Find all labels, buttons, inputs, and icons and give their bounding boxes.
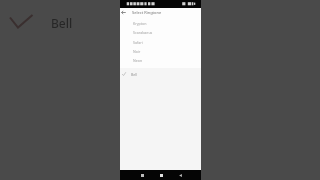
- button[interactable]: Scarabaeus: [120, 28, 201, 37]
- staticText: Bell: [131, 72, 138, 77]
- staticText: Scarabaeus: [133, 30, 153, 35]
- other: Back: [121, 10, 126, 15]
- staticText: Select Ringtone: [132, 10, 162, 15]
- button[interactable]: Back: [120, 7, 201, 17]
- staticText: Bell: [51, 15, 73, 31]
- staticText: Noir: [133, 49, 141, 54]
- button[interactable]: Recents: [137, 170, 147, 180]
- button[interactable]: Home: [156, 170, 166, 180]
- button[interactable]: Krypton: [120, 19, 201, 28]
- staticText: Krypton: [133, 21, 147, 26]
- staticText: Safari: [133, 40, 143, 45]
- staticText: Neon: [133, 58, 143, 63]
- button[interactable]: Neon: [120, 56, 201, 65]
- button[interactable]: Noir: [120, 47, 201, 56]
- button[interactable]: Selected check: [8, 13, 34, 30]
- button[interactable]: Safari: [120, 38, 201, 47]
- button[interactable]: Bell: [120, 69, 201, 79]
- button[interactable]: Back: [175, 170, 185, 180]
